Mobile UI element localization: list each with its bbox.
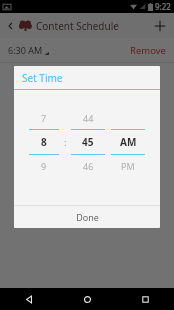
button[interactable]: 6:30 AM bbox=[8, 44, 49, 56]
button[interactable]: Back bbox=[4, 19, 18, 33]
staticText: 8 bbox=[41, 135, 47, 149]
staticText: Remove bbox=[130, 44, 166, 57]
staticText: PM bbox=[121, 160, 135, 172]
staticText: Set Time bbox=[22, 71, 63, 85]
staticText: Done bbox=[76, 211, 99, 223]
staticText: 44 bbox=[83, 112, 94, 124]
staticText: AM bbox=[120, 135, 137, 149]
button[interactable]: AM bbox=[111, 107, 145, 177]
staticText: : bbox=[64, 136, 67, 148]
staticText: 7 bbox=[41, 112, 47, 124]
button[interactable]: Back bbox=[0, 288, 58, 310]
staticText: 45 bbox=[82, 135, 94, 149]
button[interactable]: Home bbox=[58, 288, 116, 310]
staticText: Content Schedule bbox=[36, 19, 119, 33]
staticText: 46 bbox=[83, 160, 94, 172]
staticText: 6:30 AM bbox=[8, 44, 43, 56]
button[interactable]: Add bbox=[150, 16, 170, 36]
staticText: 9:22 bbox=[155, 1, 171, 12]
button[interactable]: 44 bbox=[71, 107, 105, 177]
button[interactable]: Done bbox=[14, 206, 160, 228]
button[interactable]: Remove bbox=[130, 44, 166, 57]
button[interactable]: Recents bbox=[116, 288, 174, 310]
button[interactable]: 7 bbox=[29, 107, 59, 177]
staticText: 9 bbox=[41, 160, 47, 172]
